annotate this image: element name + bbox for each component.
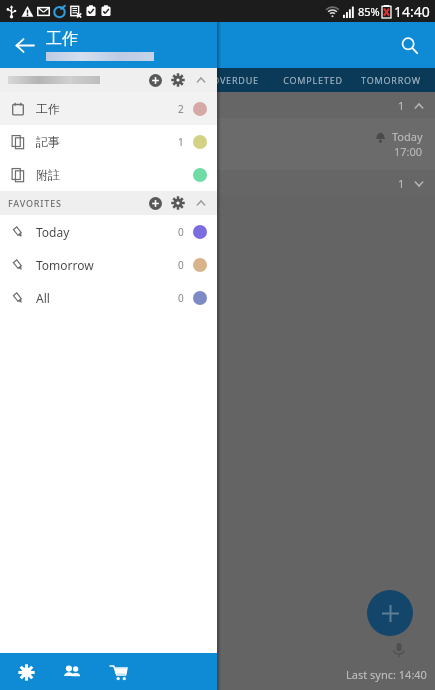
button[interactable]: 記事	[0, 125, 217, 158]
staticText: 17:00	[394, 144, 423, 159]
button[interactable]: Settings	[10, 656, 42, 688]
staticText: 0	[178, 258, 184, 272]
button[interactable]: Add	[145, 70, 165, 90]
button[interactable]: Back	[8, 29, 40, 61]
staticText: 工作	[36, 101, 60, 116]
button[interactable]: TOMORROW	[352, 74, 430, 86]
staticText: 2	[178, 102, 184, 116]
button[interactable]: FAVORITES	[0, 191, 217, 215]
button[interactable]: Store	[102, 656, 134, 688]
button[interactable]: Today	[0, 215, 217, 248]
button[interactable]: All	[0, 281, 217, 314]
button[interactable]: Voice input	[391, 642, 407, 658]
staticText: Last sync: 14:40	[346, 667, 427, 682]
staticText: Today	[36, 224, 70, 240]
staticText: 0	[178, 291, 184, 305]
button[interactable]: OVERDUE	[196, 74, 274, 86]
button[interactable]: Settings	[168, 193, 188, 213]
staticText: Today	[392, 129, 423, 144]
button[interactable]: Add	[0, 68, 217, 92]
staticText: COMPLETED	[283, 74, 343, 86]
button[interactable]: Add	[145, 193, 165, 213]
staticText: OVERDUE	[212, 74, 259, 86]
button[interactable]: Settings	[168, 70, 188, 90]
button[interactable]: 工作	[0, 92, 217, 125]
staticText: 85%	[358, 4, 380, 19]
button[interactable]: COMPLETED	[274, 74, 352, 86]
button[interactable]: Search	[393, 29, 425, 61]
staticText: 0	[178, 225, 184, 239]
button[interactable]: 附註	[0, 158, 217, 191]
button[interactable]: 1	[0, 92, 435, 118]
staticText: All	[36, 290, 50, 306]
staticText: 1	[398, 176, 405, 191]
staticText: 記事	[36, 134, 60, 149]
staticText: 1	[178, 135, 184, 149]
button[interactable]: 1	[0, 170, 435, 196]
staticText: 工作	[46, 29, 78, 49]
button[interactable]: Add task	[367, 590, 413, 636]
staticText: Tomorrow	[36, 257, 94, 273]
button[interactable]: Collapse	[191, 70, 211, 90]
button[interactable]: Today	[0, 118, 435, 170]
staticText: FAVORITES	[8, 197, 62, 209]
staticText: 14:40	[394, 2, 430, 21]
button[interactable]: Collapse	[191, 193, 211, 213]
button[interactable]: Tomorrow	[0, 248, 217, 281]
staticText: 附註	[36, 167, 60, 182]
button[interactable]: People	[56, 656, 88, 688]
staticText: TOMORROW	[361, 74, 421, 86]
staticText: 1	[398, 98, 405, 113]
